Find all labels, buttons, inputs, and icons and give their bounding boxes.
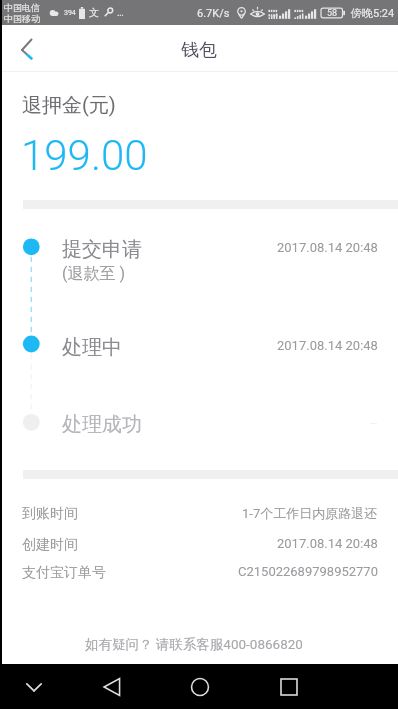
staticText: 2017.08.14 20:48 — [277, 240, 378, 255]
staticText: 1-7个工作日内原路退还 — [242, 505, 378, 521]
staticText: 199.00 — [21, 131, 148, 180]
staticText: 提交申请 — [62, 237, 142, 262]
staticText: 394 — [64, 9, 76, 17]
staticText: 傍晚5:24 — [351, 6, 395, 20]
staticText: C215022689798952770 — [238, 564, 378, 579]
staticText: 支付宝订单号 — [22, 564, 106, 582]
staticText: (退款至 ) — [62, 264, 126, 284]
staticText: -- — [370, 415, 378, 430]
staticText: 6.7K/s — [197, 7, 230, 20]
staticText: 2017.08.14 20:48 — [277, 338, 378, 353]
staticText: 退押金(元) — [22, 93, 116, 118]
staticText: 58 — [327, 8, 338, 19]
button[interactable]: Hide keyboard — [14, 667, 54, 707]
staticText: 如有疑问？ 请联系客服400-0866820 — [85, 636, 303, 653]
staticText: 文 — [89, 6, 99, 19]
button[interactable]: Home — [180, 667, 220, 707]
button[interactable]: Back — [92, 667, 132, 707]
staticText: 创建时间 — [22, 536, 78, 554]
staticText: 中国电信 — [4, 2, 40, 13]
staticText: 钱包 — [181, 39, 217, 62]
button[interactable]: Recent apps — [269, 667, 309, 707]
staticText: … — [117, 7, 124, 19]
staticText: 2017.08.14 20:48 — [277, 536, 378, 551]
staticText: 处理中 — [62, 335, 122, 360]
staticText: 中国移动 — [4, 13, 40, 24]
button[interactable]: Back — [0, 25, 48, 72]
staticText: 处理成功 — [62, 412, 142, 437]
staticText: 到账时间 — [22, 505, 78, 523]
